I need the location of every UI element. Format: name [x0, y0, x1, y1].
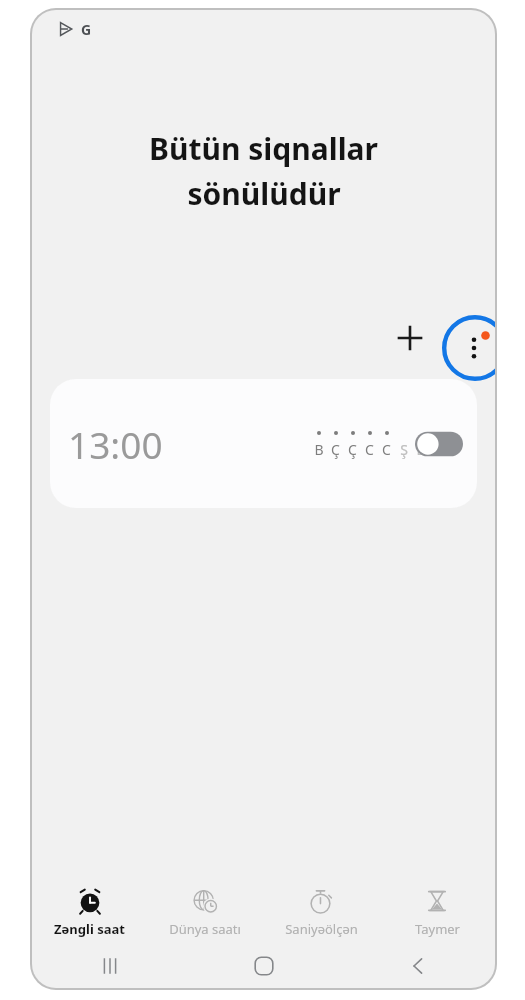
staticText: B	[416, 440, 426, 459]
staticText: B	[314, 440, 324, 459]
staticText: 13:00	[68, 419, 163, 469]
staticText: Dünya saatı	[169, 920, 241, 938]
button[interactable]: Home	[187, 944, 341, 988]
button[interactable]: More options	[442, 315, 495, 381]
staticText: Ç	[348, 440, 357, 459]
staticText: sönülüdür	[187, 173, 341, 214]
button[interactable]: Saniyəölçən	[263, 882, 379, 944]
staticText: C	[382, 440, 391, 459]
button[interactable]: Back	[341, 944, 495, 988]
staticText: Bütün siqnallar	[149, 128, 378, 169]
button[interactable]: Alarm on/off	[415, 429, 463, 459]
staticText: Saniyəölçən	[285, 920, 358, 938]
button[interactable]: Add alarm	[388, 316, 432, 360]
button[interactable]: Recent apps	[32, 944, 187, 988]
staticText: G	[81, 20, 92, 39]
button[interactable]: 13:00	[50, 379, 477, 508]
staticText: Taymer	[415, 920, 460, 938]
staticText: Ç	[331, 440, 340, 459]
button[interactable]: Taymer	[379, 882, 495, 944]
staticText: C	[365, 440, 374, 459]
staticText: Zəngli saat	[54, 920, 125, 938]
button[interactable]: Zəngli saat	[32, 882, 147, 944]
button[interactable]: Dünya saatı	[147, 882, 263, 944]
staticText: Ş	[400, 440, 408, 459]
